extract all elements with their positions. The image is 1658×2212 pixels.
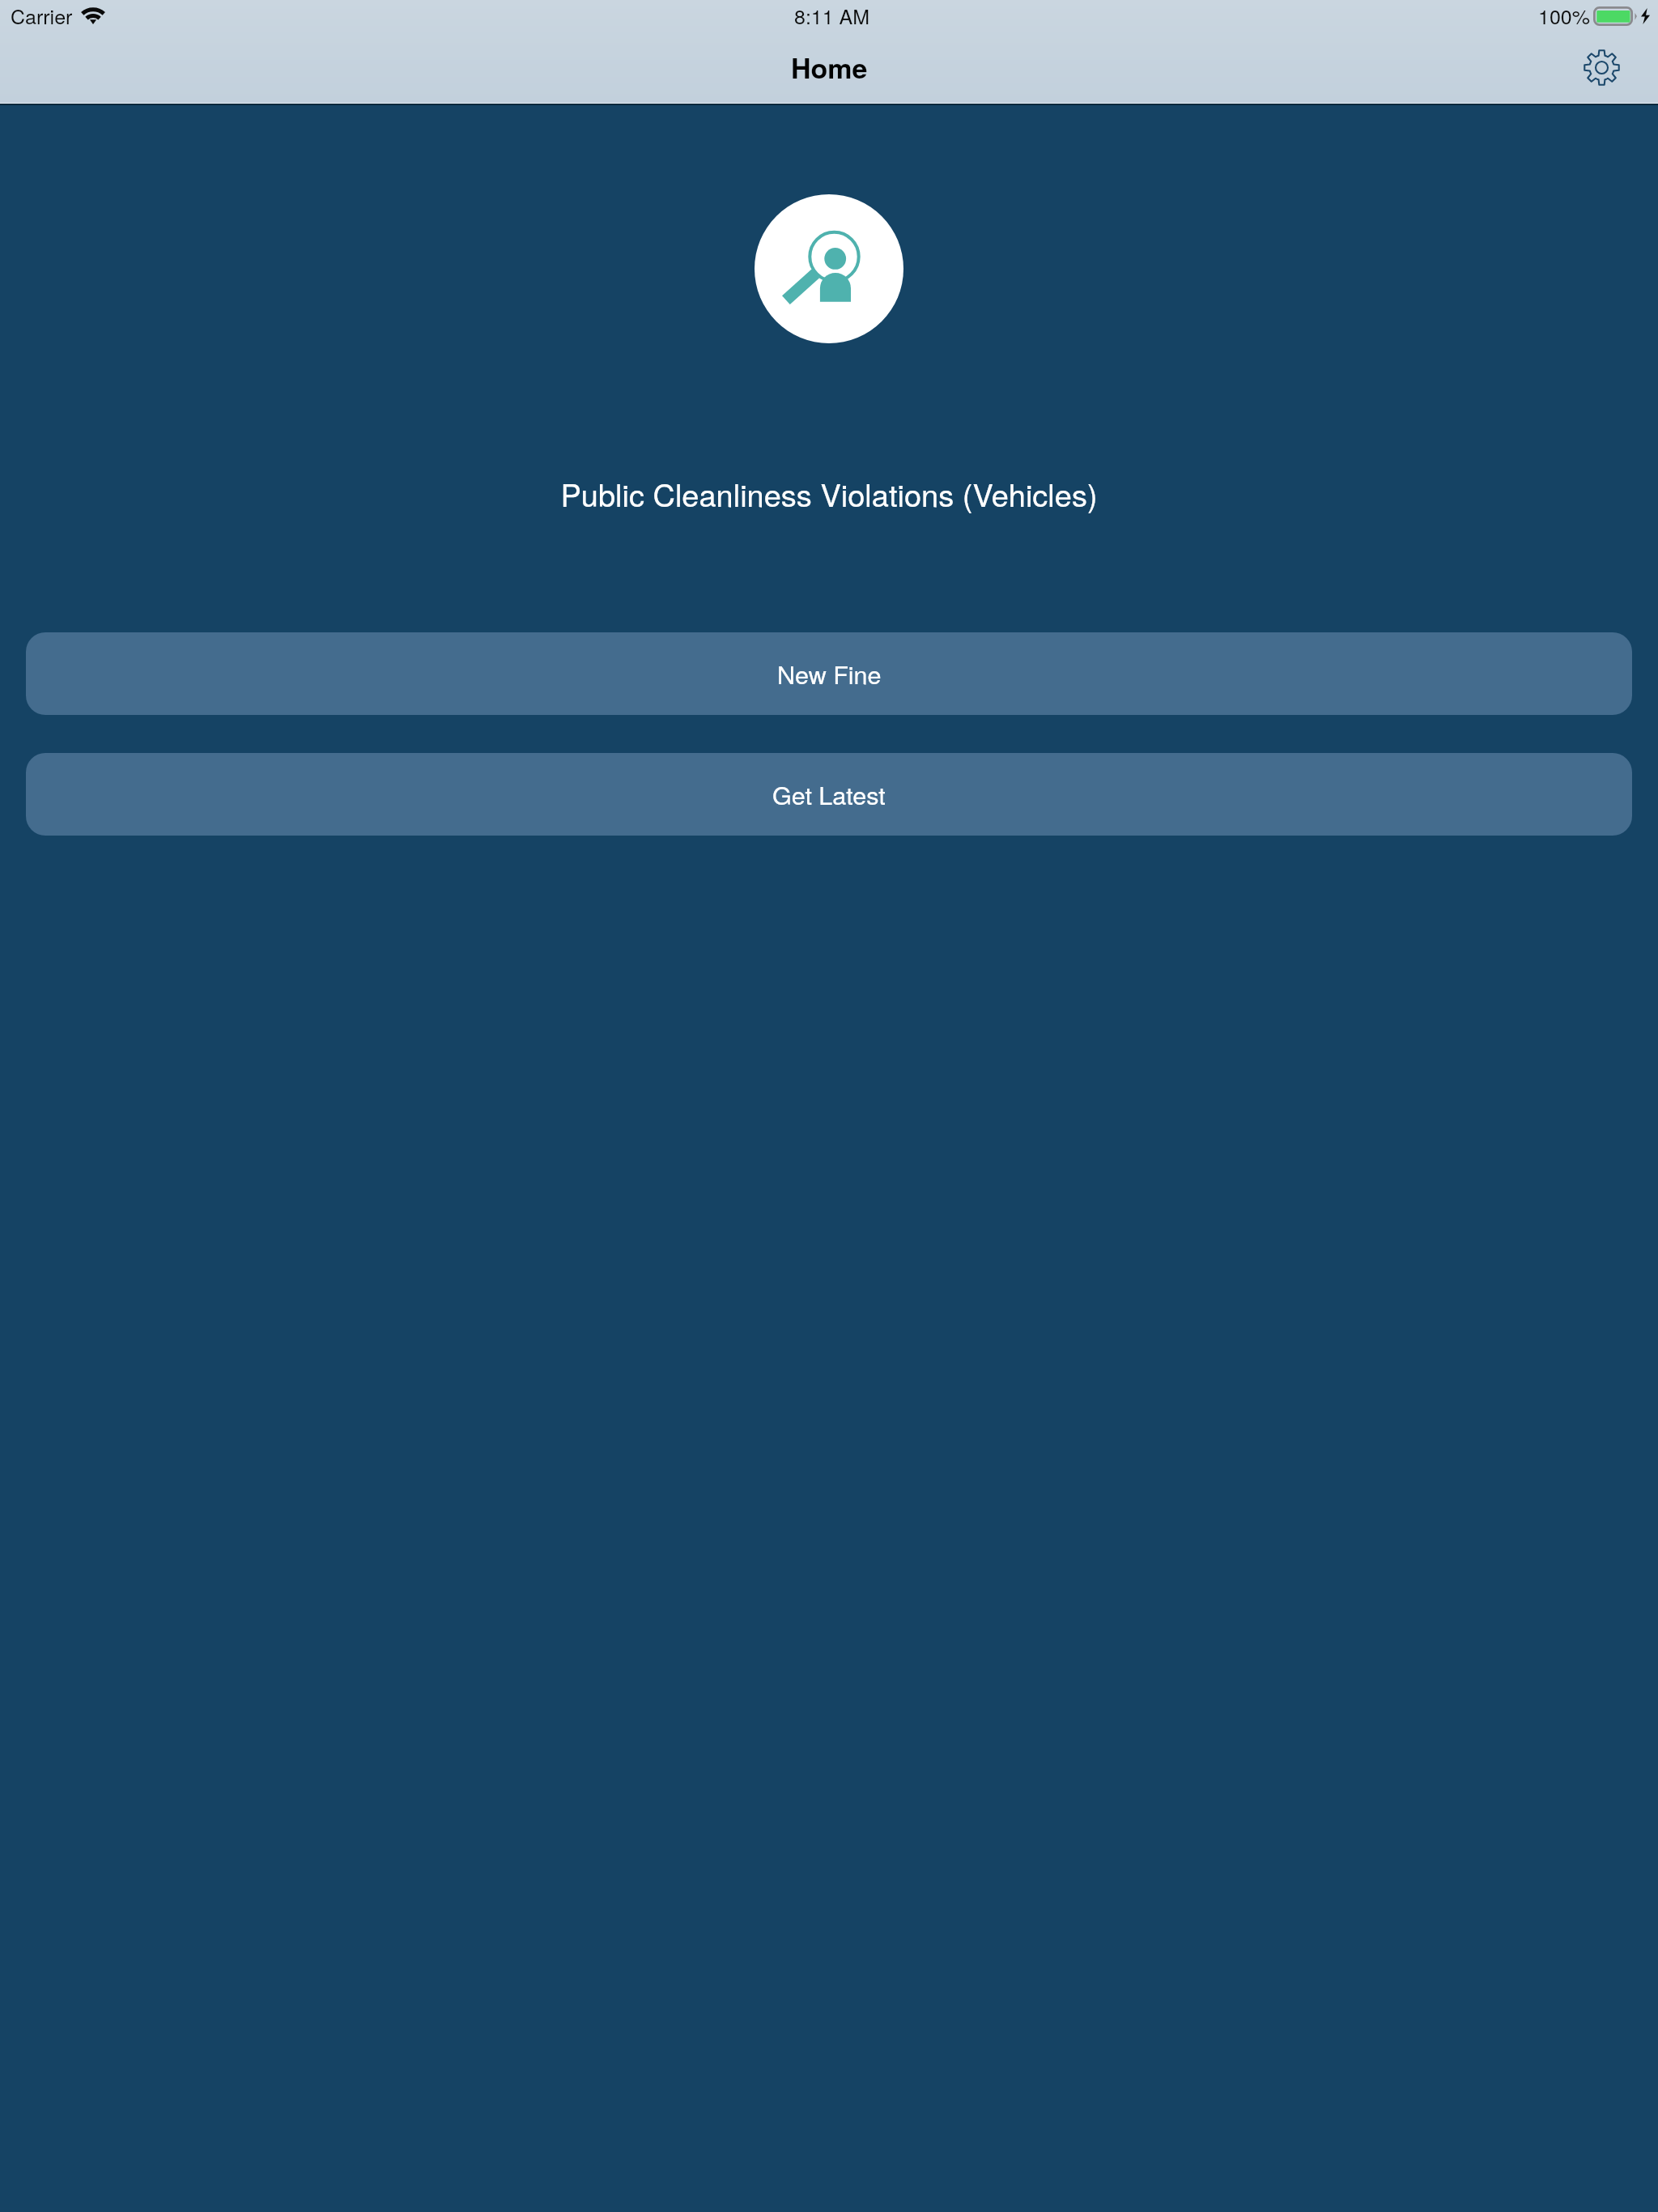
staticText: Get Latest <box>772 776 886 812</box>
button[interactable]: Settings <box>1575 41 1627 93</box>
button[interactable]: Get Latest <box>26 753 1632 836</box>
staticText: Public Cleanliness Violations (Vehicles) <box>0 471 1658 515</box>
staticText: 8:11 AM <box>794 1 870 30</box>
staticText: Carrier <box>11 1 73 30</box>
staticText: 100% <box>1538 1 1590 30</box>
staticText: New Fine <box>777 656 882 691</box>
button[interactable]: New Fine <box>26 632 1632 715</box>
staticText: Home <box>791 48 868 87</box>
